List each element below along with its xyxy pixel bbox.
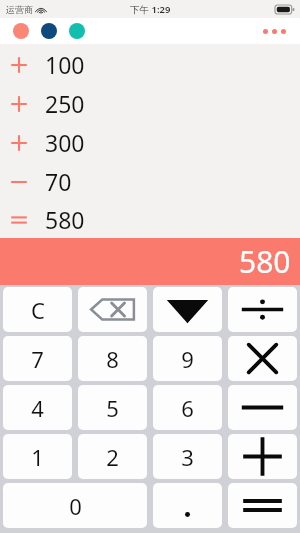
staticText: 运营商 bbox=[6, 4, 33, 15]
staticText: 100 bbox=[45, 49, 85, 80]
button[interactable]: 6 bbox=[153, 385, 222, 430]
staticText: 5 bbox=[106, 393, 119, 423]
button[interactable]: 250 bbox=[0, 84, 300, 123]
button[interactable]: Hide keyboard bbox=[153, 287, 222, 332]
button[interactable]: 300 bbox=[0, 123, 300, 162]
button[interactable]: 4 bbox=[3, 385, 72, 430]
staticText: C bbox=[31, 295, 45, 325]
button[interactable]: Theme teal bbox=[69, 23, 85, 39]
staticText: 250 bbox=[45, 88, 85, 119]
button[interactable]: Decimal point bbox=[153, 483, 222, 528]
button[interactable]: 580 bbox=[0, 201, 300, 238]
staticText: 3 bbox=[181, 442, 194, 472]
staticText: 4 bbox=[31, 393, 44, 423]
staticText: 580 bbox=[45, 204, 85, 235]
button[interactable]: 1 bbox=[3, 434, 72, 479]
staticText: 6 bbox=[181, 393, 194, 423]
staticText: 580 bbox=[239, 241, 291, 282]
staticText: 0 bbox=[69, 491, 82, 521]
button[interactable]: Divide bbox=[228, 287, 297, 332]
button[interactable]: 8 bbox=[78, 336, 147, 381]
staticText: 300 bbox=[45, 127, 85, 158]
button[interactable]: Theme coral bbox=[13, 23, 29, 39]
staticText: 8 bbox=[106, 344, 119, 374]
staticText: 70 bbox=[45, 166, 72, 197]
button[interactable]: Plus bbox=[228, 434, 297, 479]
button[interactable]: Minus bbox=[228, 385, 297, 430]
staticText: 2 bbox=[106, 442, 119, 472]
button[interactable]: Multiply bbox=[228, 336, 297, 381]
staticText: 7 bbox=[31, 344, 44, 374]
button[interactable]: 0 bbox=[3, 483, 147, 528]
button[interactable]: 5 bbox=[78, 385, 147, 430]
staticText: 9 bbox=[181, 344, 194, 374]
button[interactable]: More options bbox=[260, 26, 289, 37]
button[interactable]: 100 bbox=[0, 45, 300, 84]
button[interactable]: C bbox=[3, 287, 72, 332]
staticText: 1 bbox=[31, 442, 44, 472]
button[interactable]: 2 bbox=[78, 434, 147, 479]
button[interactable]: 7 bbox=[3, 336, 72, 381]
staticText: 下午 1:29 bbox=[130, 3, 171, 16]
button[interactable]: Theme blue bbox=[41, 23, 57, 39]
button[interactable]: Backspace bbox=[78, 287, 147, 332]
button[interactable]: 3 bbox=[153, 434, 222, 479]
button[interactable]: 9 bbox=[153, 336, 222, 381]
button[interactable]: 70 bbox=[0, 162, 300, 201]
button[interactable]: Equals bbox=[228, 483, 297, 528]
